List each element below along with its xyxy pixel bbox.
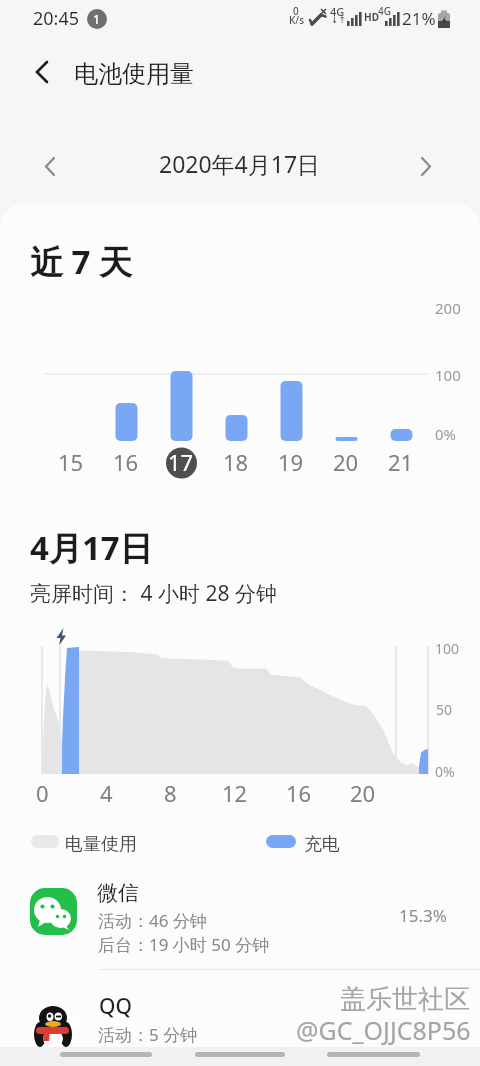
staticText: 0: [293, 4, 299, 18]
staticText: 活动：5 分钟: [98, 1023, 198, 1046]
staticText: 20: [333, 447, 359, 477]
staticText: 4G: [378, 4, 391, 18]
staticText: 2020年4月17日: [159, 148, 321, 179]
staticText: 21: [388, 447, 414, 477]
staticText: K/s: [289, 13, 305, 27]
staticText: 20: [350, 778, 376, 808]
staticText: QQ: [99, 992, 132, 1021]
button[interactable]: [150, 148, 330, 184]
staticText: 50: [436, 700, 453, 719]
staticText: 16: [286, 778, 312, 808]
staticText: 0%: [435, 424, 457, 444]
staticText: 活动：46 分钟: [98, 909, 207, 932]
button[interactable]: [32, 148, 68, 184]
staticText: 充电: [304, 833, 340, 856]
staticText: 15: [58, 447, 84, 477]
staticText: 4: [100, 778, 113, 808]
staticText: 盖乐世社区: [340, 983, 470, 1016]
staticText: 后台：19 小时 50 分钟: [98, 933, 270, 956]
staticText: ↓↑: [331, 15, 347, 25]
staticText: 0: [36, 778, 49, 808]
staticText: 17: [168, 447, 194, 477]
staticText: 12: [222, 778, 248, 808]
staticText: 4月17日: [30, 525, 153, 570]
staticText: 4G: [330, 4, 345, 19]
staticText: 200: [435, 298, 461, 318]
staticText: 亮屏时间： 4 小时 28 分钟: [30, 579, 277, 608]
staticText: 21%: [402, 7, 436, 30]
button[interactable]: [16, 988, 464, 1048]
staticText: 微信: [97, 880, 139, 906]
staticText: 100: [435, 365, 461, 385]
staticText: 1: [93, 11, 100, 27]
staticText: 18: [223, 447, 249, 477]
staticText: 电量使用: [65, 833, 137, 856]
button[interactable]: [16, 878, 464, 966]
staticText: 电池使用量: [74, 59, 194, 89]
staticText: 19: [278, 447, 304, 477]
button[interactable]: [24, 54, 64, 94]
staticText: HD: [364, 10, 379, 24]
staticText: @GC_OJJC8P56: [296, 1013, 471, 1047]
staticText: 0%: [435, 762, 455, 781]
staticText: 8: [164, 778, 177, 808]
button[interactable]: [410, 148, 446, 184]
staticText: 15.3%: [399, 904, 447, 927]
staticText: 20:45: [33, 6, 80, 31]
staticText: 16: [113, 447, 139, 477]
staticText: 100: [435, 639, 460, 658]
staticText: 近 7 天: [30, 239, 133, 284]
